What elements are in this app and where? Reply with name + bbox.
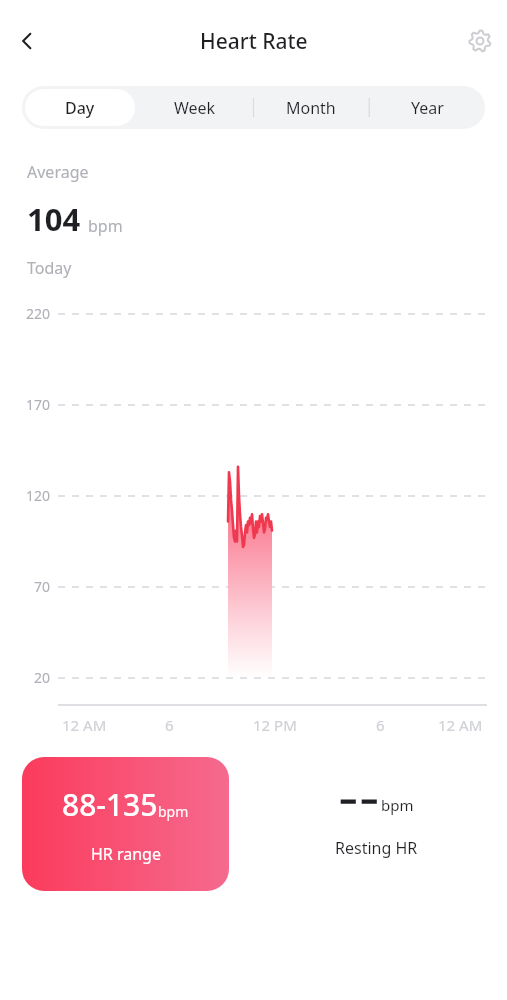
staticText: Heart Rate	[200, 27, 308, 56]
button[interactable]: Week	[137, 86, 253, 129]
staticText: Average	[27, 161, 89, 183]
button[interactable]: bpm	[268, 757, 485, 891]
button[interactable]: Month	[253, 86, 369, 129]
staticText: Week	[174, 97, 216, 119]
button[interactable]: Back	[6, 20, 48, 62]
button[interactable]: Day	[25, 89, 135, 126]
staticText: bpm	[88, 215, 123, 237]
staticText: 220	[25, 304, 50, 323]
staticText: Year	[411, 97, 444, 119]
staticText: Day	[65, 97, 95, 119]
staticText: 170	[25, 395, 50, 414]
staticText: HR range	[91, 843, 161, 865]
staticText: 104	[27, 198, 81, 240]
staticText: 12 AM	[438, 715, 483, 735]
staticText: 70	[33, 577, 50, 596]
staticText: 12 AM	[62, 715, 107, 735]
staticText: 12 PM	[253, 715, 297, 735]
staticText: 120	[25, 486, 50, 505]
button[interactable]	[22, 86, 137, 129]
staticText: Today	[27, 257, 72, 279]
staticText: 6	[376, 715, 385, 735]
staticText: Month	[286, 97, 336, 119]
staticText: bpm	[158, 802, 189, 821]
staticText: Resting HR	[335, 837, 418, 859]
button[interactable]: 88-135	[22, 757, 229, 891]
staticText: 20	[33, 668, 50, 687]
staticText: 88-135	[62, 784, 158, 825]
staticText: 6	[165, 715, 174, 735]
staticText: bpm	[381, 795, 414, 815]
button[interactable]: Year	[369, 86, 485, 129]
button[interactable]: Settings	[459, 20, 501, 62]
